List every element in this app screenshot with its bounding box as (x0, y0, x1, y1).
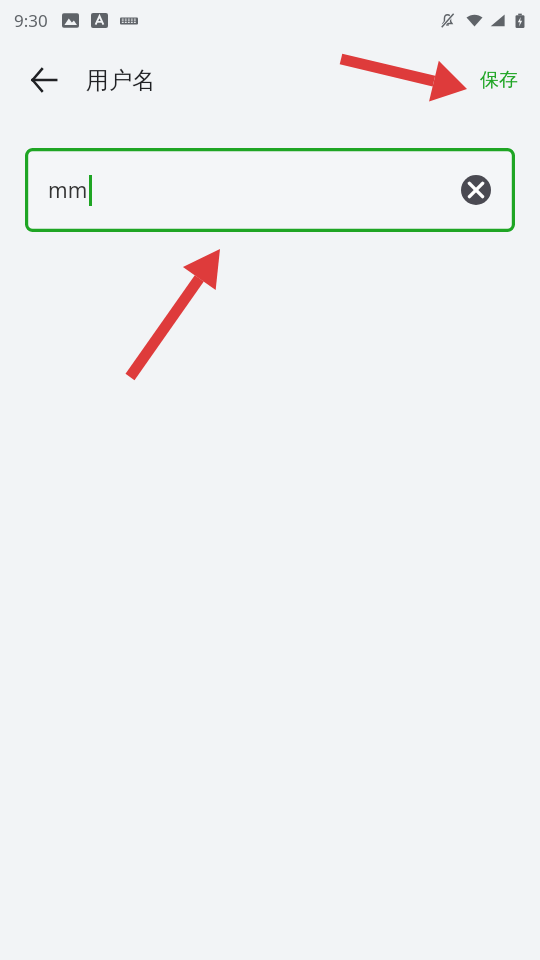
staticText: 用户名 (86, 66, 155, 95)
button[interactable]: 保存 (472, 60, 526, 100)
staticText: 9:30 (14, 9, 48, 32)
staticText: mm (48, 176, 88, 205)
button[interactable]: Clear text (457, 171, 495, 209)
button[interactable]: mm (25, 148, 515, 232)
staticText: 保存 (480, 68, 518, 92)
button[interactable]: Back (16, 52, 72, 108)
